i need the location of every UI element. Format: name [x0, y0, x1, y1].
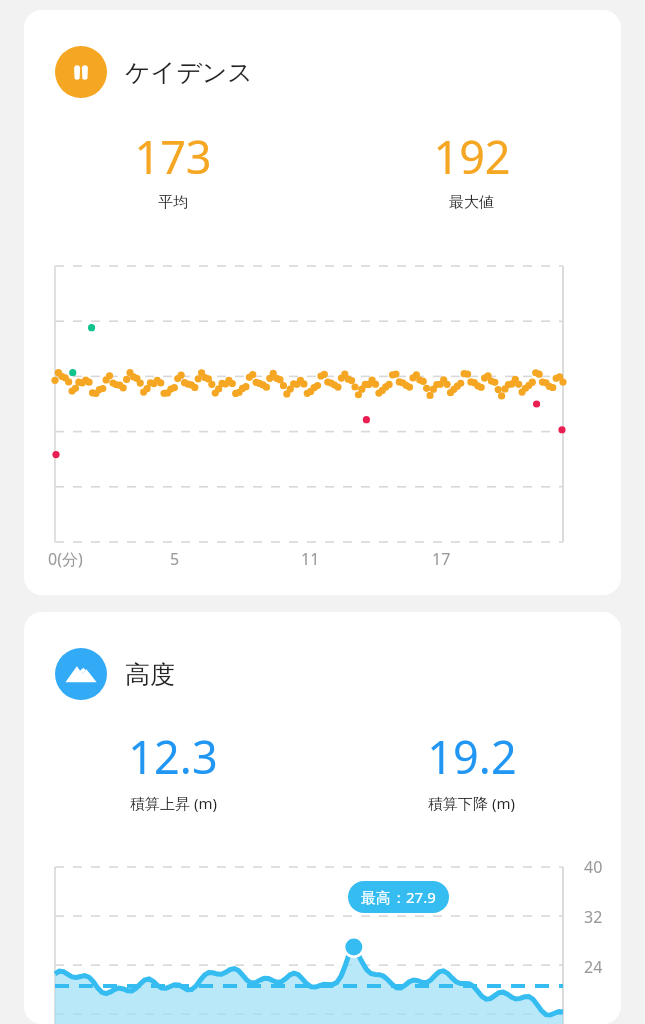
staticText: 平均: [158, 193, 188, 212]
button[interactable]: 173: [24, 126, 322, 212]
button[interactable]: 最高：27.9: [348, 881, 449, 913]
button[interactable]: Cadence: [24, 10, 621, 595]
button[interactable]: 12.3: [24, 726, 322, 813]
staticText: 高度: [125, 659, 175, 690]
staticText: 24: [584, 956, 603, 978]
staticText: 最高：27.9: [361, 887, 436, 907]
staticText: ケイデンス: [125, 57, 253, 88]
button[interactable]: Elevation: [24, 612, 621, 1024]
staticText: 192: [433, 126, 511, 187]
staticText: 5: [170, 548, 180, 570]
staticText: 最大値: [449, 193, 494, 212]
staticText: 12.3: [128, 726, 218, 787]
staticText: 積算上昇 (m): [130, 793, 217, 813]
staticText: 0(分): [48, 548, 83, 570]
staticText: 173: [134, 126, 212, 187]
button[interactable]: 192: [322, 126, 621, 212]
other: Elevation: [55, 648, 107, 700]
button[interactable]: 19.2: [322, 726, 621, 813]
staticText: 11: [301, 548, 320, 570]
staticText: 積算下降 (m): [428, 793, 515, 813]
staticText: 17: [432, 548, 451, 570]
staticText: 19.2: [427, 726, 517, 787]
staticText: 32: [584, 906, 603, 928]
staticText: 40: [584, 856, 603, 878]
other: Cadence: [55, 46, 107, 98]
